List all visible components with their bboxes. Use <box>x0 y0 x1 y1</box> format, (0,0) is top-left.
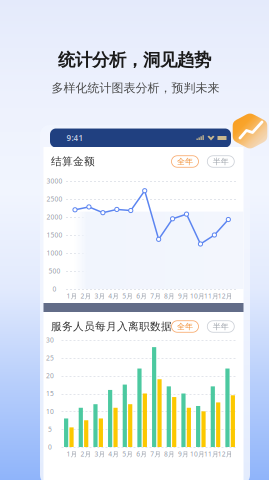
staticText: 3000 <box>46 177 62 185</box>
staticText: 7月 <box>150 292 161 300</box>
staticText: 8月 <box>164 292 175 300</box>
staticText: 3月 <box>94 450 105 458</box>
staticText: 15 <box>46 389 54 398</box>
button[interactable]: 全年 <box>171 156 198 167</box>
staticText: 2500 <box>46 195 62 203</box>
staticText: 3月 <box>94 292 105 300</box>
staticText: 1月 <box>66 292 77 300</box>
staticText: 服务人员每月入离职数据 <box>51 320 172 333</box>
staticText: 11月 <box>204 450 219 458</box>
staticText: 统计分析，洞见趋势 <box>58 49 211 71</box>
staticText: 12月 <box>218 292 233 300</box>
staticText: 9月 <box>178 450 189 458</box>
staticText: 5月 <box>122 450 133 458</box>
staticText: 4月 <box>108 450 119 458</box>
staticText: 12月 <box>218 450 233 458</box>
button[interactable]: 半年 <box>207 156 234 167</box>
staticText: 0 <box>52 285 56 293</box>
staticText: 全年 <box>177 157 193 166</box>
staticText: 2月 <box>80 292 91 300</box>
staticText: 500 <box>48 267 60 275</box>
staticText: 全年 <box>177 322 193 331</box>
staticText: 5 <box>48 425 52 434</box>
staticText: 0 <box>48 443 52 451</box>
staticText: 1月 <box>66 450 77 458</box>
staticText: 半年 <box>213 322 229 331</box>
staticText: 半年 <box>213 157 229 166</box>
staticText: 5月 <box>122 292 133 300</box>
staticText: 30 <box>46 336 54 344</box>
staticText: 1500 <box>46 231 62 239</box>
staticText: 10 <box>46 407 54 416</box>
button[interactable]: 全年 <box>171 321 198 332</box>
staticText: 结算金额 <box>51 155 95 168</box>
staticText: 20 <box>46 371 54 380</box>
staticText: 10月 <box>190 292 205 300</box>
staticText: 10月 <box>190 450 205 458</box>
staticText: 2月 <box>80 450 91 458</box>
staticText: 25 <box>46 353 54 362</box>
staticText: 1000 <box>46 249 62 257</box>
staticText: 6月 <box>136 292 147 300</box>
button[interactable]: 半年 <box>207 321 234 332</box>
staticText: 多样化统计图表分析，预判未来 <box>51 81 219 95</box>
staticText: 7月 <box>150 450 161 458</box>
staticText: 6月 <box>136 450 147 458</box>
staticText: 8月 <box>164 450 175 458</box>
staticText: 4月 <box>108 292 119 300</box>
staticText: 9月 <box>178 292 189 300</box>
staticText: 9:41 <box>66 133 83 143</box>
staticText: 11月 <box>204 292 219 300</box>
staticText: 2000 <box>46 213 62 221</box>
